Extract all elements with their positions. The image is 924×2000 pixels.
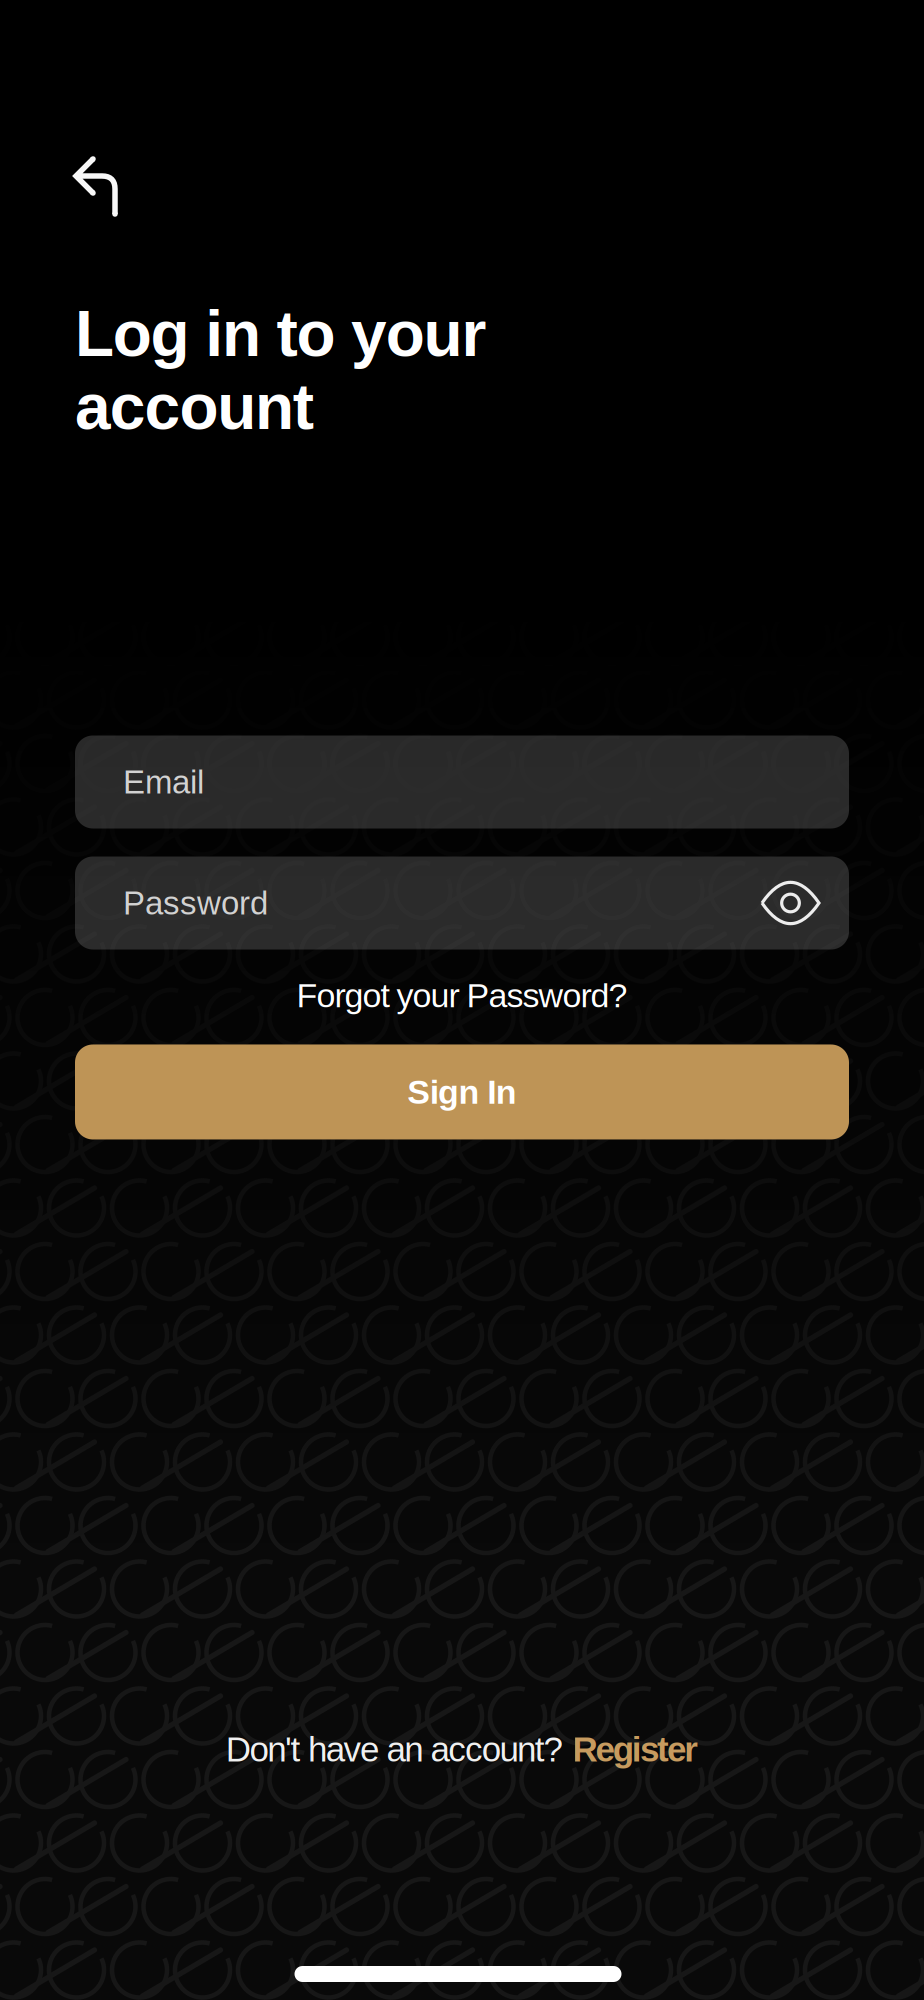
staticText: Don't have an account? — [226, 1730, 562, 1769]
staticText: Forgot your Password? — [296, 976, 627, 1014]
staticText: Sign In — [407, 1073, 517, 1111]
button[interactable]: Email — [75, 735, 849, 828]
button[interactable]: Don't have an account? — [0, 1730, 924, 1769]
staticText: Password — [123, 885, 268, 921]
button[interactable]: Back — [74, 155, 118, 217]
staticText: Email — [123, 764, 204, 800]
button[interactable]: Password — [75, 856, 849, 949]
button[interactable]: Forgot your Password? — [0, 976, 924, 1014]
staticText: Register — [572, 1730, 698, 1769]
staticText: account — [75, 371, 314, 442]
staticText: Log in to your — [75, 298, 486, 369]
button[interactable]: Sign In — [75, 1044, 849, 1139]
